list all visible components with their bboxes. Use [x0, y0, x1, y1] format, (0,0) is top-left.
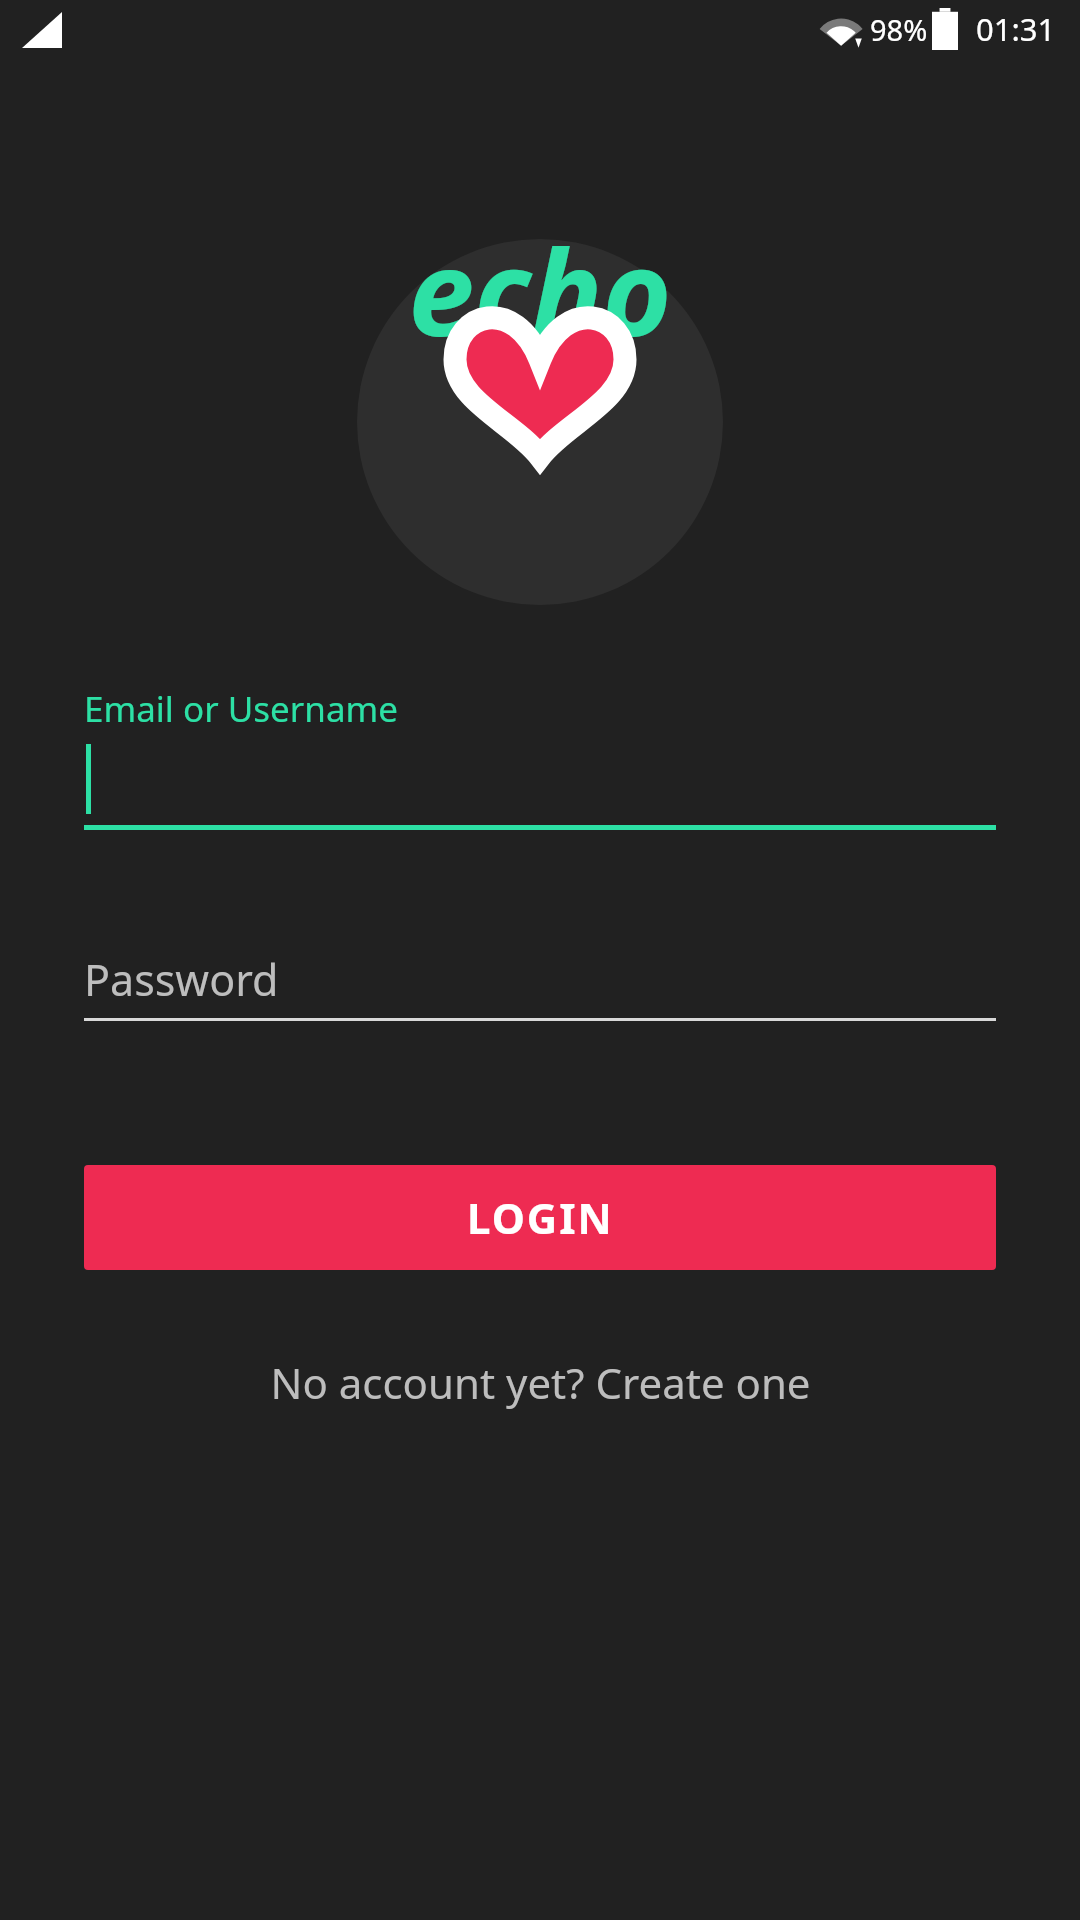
button[interactable]: LOGIN: [84, 1165, 996, 1270]
button[interactable]: No account yet? Create one: [84, 1346, 996, 1418]
staticText: 01:31: [976, 8, 1056, 50]
staticText: 98%: [870, 10, 928, 49]
staticText: echo: [408, 210, 672, 371]
staticText: No account yet? Create one: [270, 1354, 811, 1411]
staticText: LOGIN: [467, 1189, 614, 1246]
button[interactable]: Password: [84, 940, 996, 1018]
staticText: Email or Username: [84, 685, 398, 733]
button[interactable]: [84, 733, 996, 825]
staticText: Password: [84, 950, 279, 1009]
